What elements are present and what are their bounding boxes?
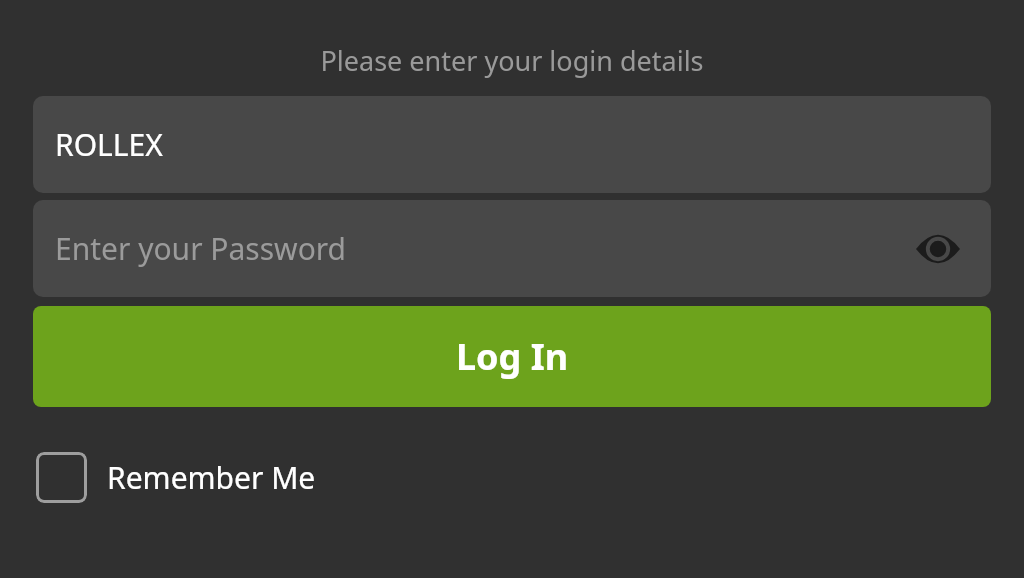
staticText: Please enter your login details xyxy=(0,42,1024,79)
staticText: Log In xyxy=(456,332,569,381)
staticText: Enter your Password xyxy=(55,228,347,269)
staticText: Remember Me xyxy=(107,457,316,498)
button[interactable]: Enter your Password xyxy=(33,200,991,297)
button[interactable]: ROLLEX xyxy=(33,96,991,193)
staticText: ROLLEX xyxy=(55,124,163,165)
button[interactable]: Log In xyxy=(33,306,991,407)
button[interactable]: Show password xyxy=(912,223,964,275)
button[interactable]: Remember Me xyxy=(36,451,316,503)
